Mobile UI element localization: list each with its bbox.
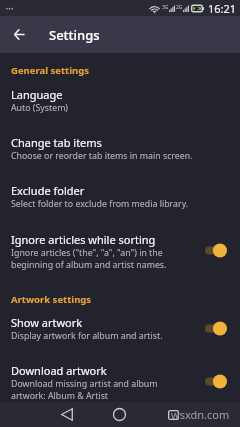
button[interactable]: Exclude folder: [0, 176, 240, 216]
staticText: 3G: [162, 4, 169, 11]
staticText: Download missing artist and album artwor…: [11, 378, 158, 401]
staticText: Display artwork for album and artist.: [11, 330, 163, 342]
button[interactable]: Language: [0, 80, 240, 120]
staticText: Download artwork: [11, 363, 107, 378]
button[interactable]: Back: [52, 402, 82, 427]
button[interactable]: Change tab items: [0, 128, 240, 168]
staticText: Ignore articles while sorting: [11, 232, 156, 247]
staticText: 2G: [176, 4, 183, 11]
staticText: Ignore articles ("the", "a", "an") in th…: [11, 247, 167, 270]
staticText: Choose or reorder tab items in main scre…: [11, 150, 193, 162]
staticText: Select folder to exclude from media libr…: [11, 198, 189, 210]
staticText: wsxdn.com: [171, 407, 230, 422]
staticText: Change tab items: [11, 135, 102, 150]
button[interactable]: Toggle setting: [205, 374, 227, 389]
button[interactable]: Recent apps: [158, 402, 188, 427]
button[interactable]: Toggle setting: [205, 243, 227, 258]
staticText: Auto (System): [11, 102, 69, 114]
button[interactable]: Download artwork: [0, 356, 240, 407]
staticText: Settings: [49, 26, 100, 44]
staticText: Show artwork: [11, 315, 83, 330]
button[interactable]: Back: [0, 16, 38, 53]
button[interactable]: Toggle setting: [205, 321, 227, 336]
staticText: 16:21: [208, 1, 237, 16]
button[interactable]: Ignore articles while sorting: [0, 225, 240, 276]
staticText: Artwork settings: [11, 293, 92, 306]
staticText: Language: [11, 87, 63, 102]
button[interactable]: Home: [104, 402, 134, 427]
staticText: Exclude folder: [11, 183, 85, 198]
button[interactable]: Show artwork: [0, 308, 240, 348]
staticText: General settings: [11, 64, 89, 77]
